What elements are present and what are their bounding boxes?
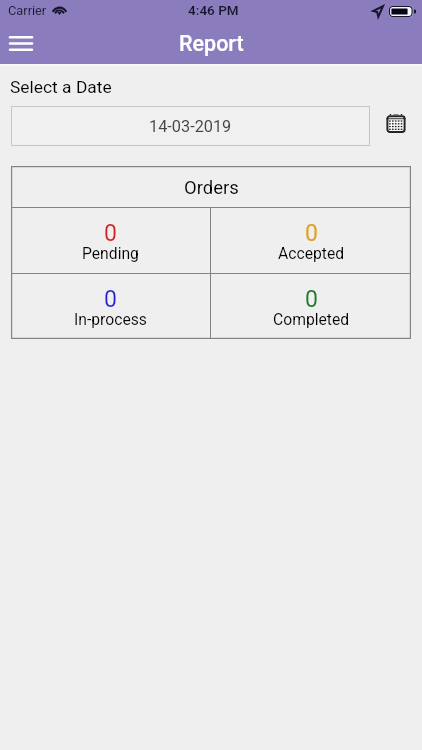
button[interactable]: 14-03-2019 [11,106,370,146]
button[interactable]: Pick date [370,106,411,146]
staticText: Report [179,31,244,56]
staticText: 0 [305,286,318,313]
staticText: Accepted [278,244,345,262]
staticText: 0 [104,286,117,313]
button[interactable]: Menu [4,26,38,60]
staticText: Orders [184,177,239,199]
staticText: In-process [74,310,147,328]
staticText: Pending [82,244,139,262]
button[interactable]: 0 [11,208,210,273]
staticText: Carrier [8,3,47,18]
staticText: Select a Date [10,77,112,97]
button[interactable]: 0 [211,274,411,339]
staticText: Completed [273,310,350,328]
staticText: 14-03-2019 [149,117,232,136]
staticText: 0 [305,220,318,247]
button[interactable]: 0 [211,208,411,273]
staticText: 4:46 PM [188,2,239,18]
button[interactable]: 0 [11,274,210,339]
staticText: 0 [104,220,117,247]
